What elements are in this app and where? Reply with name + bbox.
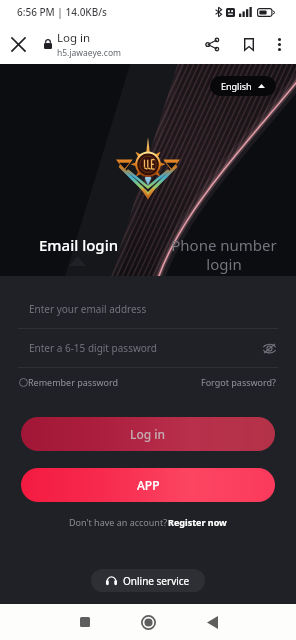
button[interactable]: Bookmark <box>232 28 265 61</box>
staticText: Enter your email address <box>29 302 278 316</box>
button[interactable]: Back <box>192 604 233 640</box>
button[interactable]: Home <box>128 604 169 640</box>
staticText: Log in <box>130 426 166 442</box>
staticText: h5.jawaeye.com <box>57 47 122 59</box>
button[interactable]: Close <box>5 31 31 57</box>
staticText: Don't have an account? <box>69 516 168 528</box>
button[interactable]: Share <box>192 24 232 64</box>
staticText: Register now <box>168 516 227 528</box>
button[interactable]: Online service <box>91 569 205 592</box>
staticText: Log in <box>57 30 91 46</box>
staticText: Online service <box>123 574 190 588</box>
button[interactable]: English <box>210 76 276 96</box>
button[interactable]: Remember password <box>19 376 119 388</box>
staticText: Phone number login <box>170 235 278 274</box>
button[interactable]: Register now <box>168 516 227 528</box>
button[interactable]: Recents <box>64 604 105 640</box>
button[interactable]: Email login <box>7 235 151 276</box>
button[interactable]: More options <box>265 30 293 58</box>
button[interactable]: Show password <box>260 339 278 357</box>
staticText: APP <box>137 477 160 493</box>
staticText: 6:56 PM | 14.0KB/s <box>17 5 107 19</box>
staticText: Email login <box>39 235 119 255</box>
staticText: Enter a 6-15 digit password <box>29 341 260 355</box>
button[interactable]: Forgot password? <box>201 376 277 388</box>
button[interactable]: Log in <box>21 417 275 451</box>
staticText: Forgot password? <box>201 376 277 388</box>
button[interactable]: APP <box>21 468 275 502</box>
button[interactable]: Phone number login <box>151 235 296 276</box>
staticText: Remember password <box>28 376 119 388</box>
staticText: English <box>221 80 252 92</box>
